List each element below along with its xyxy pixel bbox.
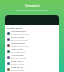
button[interactable]: Olivia Bennett [5, 30, 59, 36]
staticText: Ethan Clarke [11, 36, 25, 39]
staticText: Olivia Bennett [11, 30, 26, 33]
staticText: Sofia Reyes [11, 66, 23, 69]
staticText: Perfect, thanks [11, 63, 25, 66]
staticText: Connect [25, 3, 40, 8]
staticText: Good morning [11, 69, 24, 72]
staticText: Sounds good to me! [11, 33, 29, 36]
staticText: Noah Patel [11, 48, 23, 51]
button[interactable]: Mia Robinson [5, 42, 59, 48]
button[interactable]: Liam Turner [5, 60, 59, 66]
staticText: Recent chats [7, 26, 22, 29]
staticText: Can you call me? [11, 57, 26, 60]
staticText: Mia Robinson [11, 42, 26, 45]
staticText: On my way now [11, 51, 26, 54]
button[interactable]: Ethan Clarke [5, 36, 59, 42]
button[interactable]: Search [5, 15, 59, 25]
staticText: Liam Turner [11, 60, 24, 63]
button[interactable]: Sofia Reyes [5, 66, 59, 72]
staticText: Thanks for the help [11, 45, 29, 48]
button[interactable]: Ava Mitchell [5, 54, 59, 60]
button[interactable]: Noah Patel [5, 48, 59, 54]
staticText: See you tomorrow [11, 39, 28, 42]
staticText: Stay close to the people you love [15, 9, 49, 12]
staticText: Ava Mitchell [11, 54, 24, 57]
